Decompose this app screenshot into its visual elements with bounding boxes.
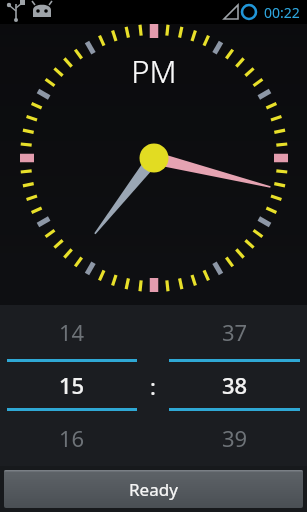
staticText: 16 xyxy=(59,423,85,453)
button[interactable]: 15 xyxy=(7,362,137,408)
staticText: 38 xyxy=(222,370,248,400)
staticText: PM xyxy=(131,50,177,92)
button[interactable]: 38 xyxy=(169,362,300,408)
staticText: : xyxy=(150,371,156,401)
button[interactable]: 39 xyxy=(169,411,300,465)
button[interactable]: Ready xyxy=(4,470,303,508)
button[interactable]: 16 xyxy=(7,411,137,465)
staticText: 15 xyxy=(59,370,85,400)
button[interactable]: 37 xyxy=(169,305,300,359)
staticText: 00:22 xyxy=(264,3,300,22)
staticText: 14 xyxy=(59,317,85,347)
button[interactable]: 14 xyxy=(7,305,137,359)
staticText: 39 xyxy=(222,423,248,453)
staticText: Ready xyxy=(129,478,178,501)
staticText: 37 xyxy=(222,317,248,347)
